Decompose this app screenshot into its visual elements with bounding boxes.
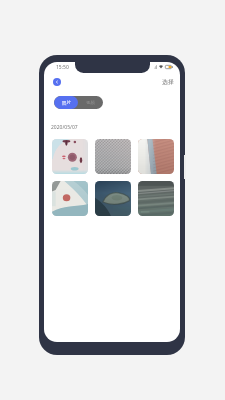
button[interactable] [52, 139, 88, 174]
button[interactable]: Back [53, 78, 61, 86]
button[interactable] [138, 181, 174, 216]
button[interactable]: 视频 [78, 96, 103, 109]
button[interactable] [95, 181, 131, 216]
button[interactable]: 选择 [162, 78, 174, 86]
staticText: 照片 [62, 100, 71, 106]
button[interactable] [95, 139, 131, 174]
button[interactable]: 照片 [54, 96, 78, 109]
staticText: 15:50 [56, 64, 69, 71]
staticText: 选择 [162, 78, 174, 86]
staticText: 2020/05/07 [51, 124, 78, 131]
button[interactable] [138, 139, 174, 174]
button[interactable] [52, 181, 88, 216]
staticText: 视频 [86, 100, 95, 106]
